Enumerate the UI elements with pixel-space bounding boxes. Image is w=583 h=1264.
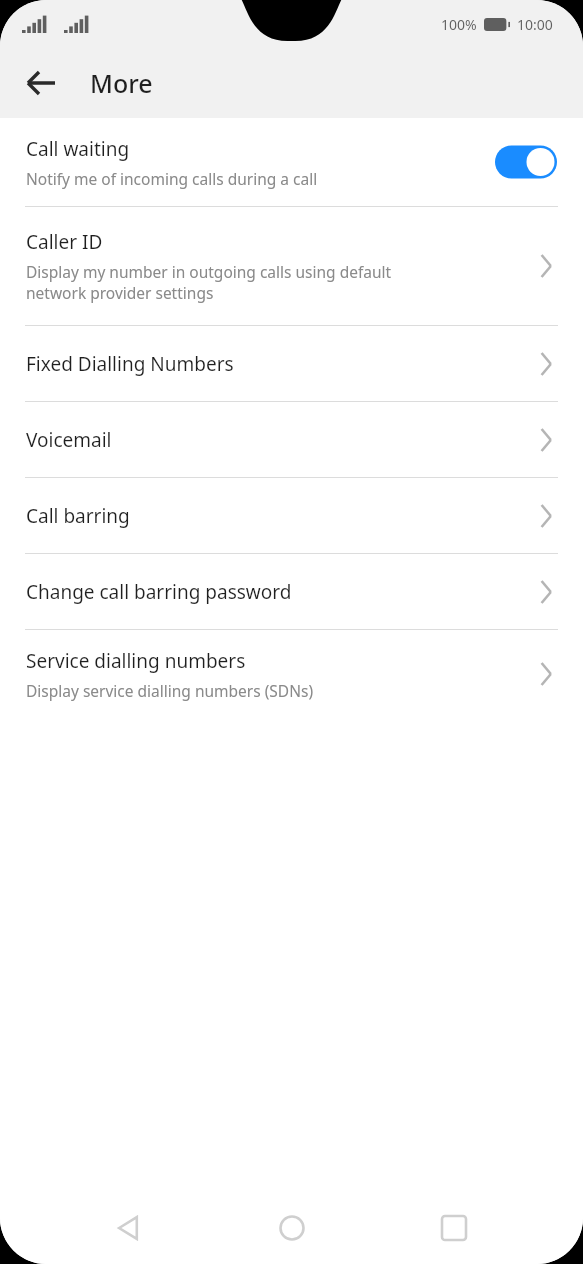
staticText: 10:00	[517, 15, 553, 34]
staticText: Call waiting	[26, 136, 130, 162]
button[interactable]: Recents	[420, 1194, 488, 1262]
staticText: Voicemail	[26, 427, 535, 453]
staticText: More	[90, 66, 153, 100]
staticText: Display service dialling numbers (SDNs)	[26, 680, 314, 701]
button[interactable]: Change call barring password	[0, 554, 583, 629]
staticText: Service dialling numbers	[26, 648, 246, 674]
button[interactable]: Call barring	[0, 478, 583, 553]
staticText: Caller ID	[26, 229, 103, 255]
button[interactable]: Caller ID	[0, 207, 583, 325]
staticText: Call barring	[26, 503, 535, 529]
button[interactable]: Back	[14, 56, 68, 110]
staticText: 100%	[441, 15, 477, 34]
staticText: Notify me of incoming calls during a cal…	[26, 168, 318, 189]
button[interactable]: Call waiting toggle	[495, 145, 557, 179]
button[interactable]: Home	[258, 1194, 326, 1262]
staticText: Display my number in outgoing calls usin…	[26, 261, 392, 304]
button[interactable]: Call waiting	[0, 118, 583, 206]
staticText: Change call barring password	[26, 579, 535, 605]
button[interactable]: Service dialling numbers	[0, 630, 583, 718]
button[interactable]: Fixed Dialling Numbers	[0, 326, 583, 401]
button[interactable]: Voicemail	[0, 402, 583, 477]
button[interactable]: Back	[95, 1194, 163, 1262]
staticText: Fixed Dialling Numbers	[26, 351, 535, 377]
